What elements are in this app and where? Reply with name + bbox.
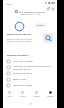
button[interactable]: Cómo usar el Negocio	[3, 58, 57, 64]
button[interactable]: Location	[15, 10, 18, 13]
button[interactable]: Funciones del Seguro	[3, 70, 57, 76]
button[interactable]: Tienda	[16, 89, 29, 99]
staticText: Información y Seguro	[13, 84, 33, 87]
staticText: Preguntas frecuentes	[7, 54, 29, 57]
staticText: Funciones del Seguro	[13, 72, 33, 75]
button[interactable]: Inicio	[3, 89, 16, 99]
staticText: Tienda	[20, 95, 26, 97]
staticText: 321 Oficina de Servicio	[19, 10, 45, 13]
button[interactable]: Diagnostics	[43, 33, 53, 43]
staticText: Servicio	[33, 95, 40, 97]
staticText: Diagnóstico del vehículo	[7, 33, 32, 36]
button[interactable]: Servicio	[35, 23, 46, 27]
button[interactable]: Batería y carga	[3, 76, 57, 82]
staticText: 9:41	[7, 2, 12, 5]
button[interactable]: Notifications	[46, 7, 50, 11]
button[interactable]: Activación/características de seguimient…	[3, 64, 57, 70]
staticText: Servicio	[37, 24, 44, 26]
staticText: Cómo usar el Negocio	[13, 60, 33, 63]
button[interactable]: Información y Seguro	[3, 82, 57, 88]
staticText: Batería y carga	[13, 78, 27, 81]
staticText: Cuenta	[47, 95, 53, 97]
button[interactable]: Profile	[51, 7, 55, 11]
staticText: Inicio	[7, 95, 12, 97]
button[interactable]: Vehicle status	[14, 21, 25, 32]
staticText: Abierto hoy 9:00 - 18:00	[3, 13, 57, 15]
staticText: Revisa el estado de tu coche y recibe un…	[7, 38, 33, 43]
staticText: Activación/características de seguimient…	[13, 65, 52, 70]
button[interactable]: Servicio	[29, 89, 43, 99]
button[interactable]: Cuenta	[43, 89, 57, 99]
